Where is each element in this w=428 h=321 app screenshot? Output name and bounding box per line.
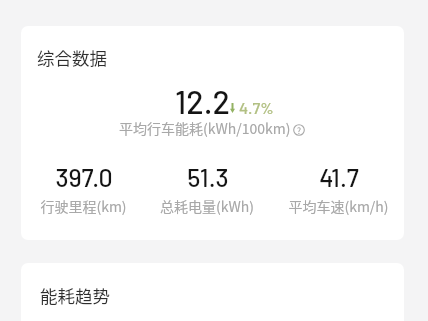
button[interactable]	[21, 26, 404, 240]
button[interactable]: 51.3	[142, 162, 272, 216]
staticText: 平均车速(km/h)	[288, 196, 389, 216]
button[interactable]: 帮助说明	[293, 124, 305, 136]
staticText: 综合数据	[37, 45, 107, 70]
staticText: 41.7	[319, 162, 359, 192]
staticText: 12.2	[175, 82, 230, 120]
staticText: 51.3	[187, 162, 229, 192]
button[interactable]	[21, 263, 404, 321]
button[interactable]: 41.7	[273, 162, 403, 216]
staticText: 平均行车能耗(kWh/100km)	[119, 118, 291, 138]
staticText: 4.7%	[239, 98, 274, 117]
staticText: ?	[297, 124, 302, 136]
staticText: 397.0	[55, 162, 113, 192]
staticText: 能耗趋势	[40, 283, 110, 308]
other: 下降	[230, 103, 235, 113]
staticText: 行驶里程(km)	[40, 196, 127, 216]
staticText: 总耗电量(kWh)	[160, 196, 254, 216]
button[interactable]: 397.0	[18, 162, 148, 216]
